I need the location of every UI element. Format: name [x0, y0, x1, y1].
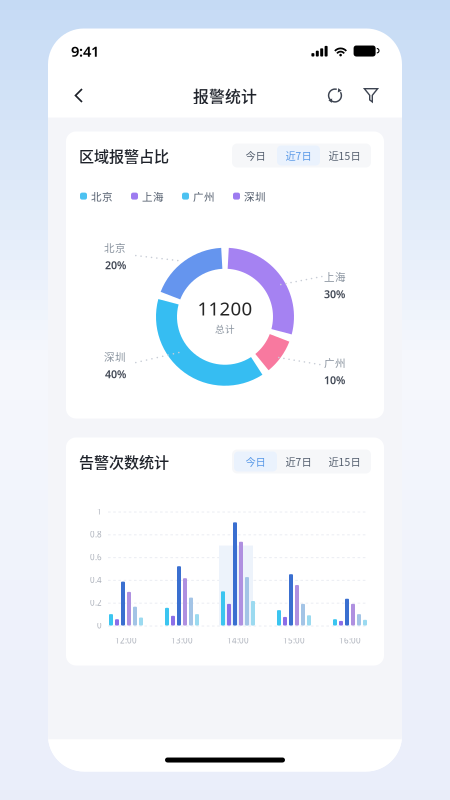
staticText: 深圳	[244, 188, 266, 204]
button[interactable]: Back	[65, 81, 93, 109]
staticText: 广州	[193, 188, 215, 204]
staticText: 0.4	[90, 575, 102, 585]
staticText: 报警统计	[193, 84, 257, 107]
button[interactable]: 近15日	[320, 451, 369, 471]
staticText: 北京	[91, 188, 113, 204]
staticText: 近7日	[285, 148, 311, 163]
staticText: 15:00	[283, 635, 305, 646]
button[interactable]: 今日	[234, 451, 277, 471]
staticText: 1	[97, 506, 102, 517]
button[interactable]: 今日	[234, 145, 277, 165]
staticText: 9:41	[71, 41, 99, 61]
staticText: 20%	[105, 258, 126, 272]
staticText: 今日	[245, 454, 265, 469]
staticText: 0.8	[90, 529, 102, 540]
button[interactable]: Filter	[357, 81, 385, 109]
staticText: 11200	[197, 296, 252, 321]
staticText: 近15日	[328, 454, 360, 469]
staticText: 深圳	[104, 349, 126, 364]
staticText: 0.6	[90, 552, 102, 562]
button[interactable]: 近7日	[277, 145, 320, 165]
staticText: 40%	[105, 367, 126, 381]
staticText: 13:00	[171, 635, 193, 646]
staticText: 14:00	[227, 635, 249, 646]
button[interactable]: 近7日	[277, 451, 320, 471]
staticText: 广州	[324, 355, 346, 370]
staticText: 近15日	[328, 148, 360, 163]
staticText: 30%	[324, 287, 345, 301]
staticText: 总计	[215, 322, 235, 336]
button[interactable]: 近15日	[320, 145, 369, 165]
staticText: 告警次数统计	[79, 451, 169, 472]
staticText: 区域报警占比	[79, 145, 169, 166]
staticText: 0	[97, 620, 102, 631]
staticText: 上海	[142, 188, 164, 204]
button[interactable]: Refresh	[321, 81, 349, 109]
staticText: 近7日	[285, 454, 311, 469]
staticText: 16:00	[339, 635, 361, 646]
staticText: 10%	[324, 373, 345, 387]
staticText: 12:00	[115, 635, 137, 646]
staticText: 上海	[324, 269, 346, 284]
staticText: 今日	[245, 148, 265, 163]
staticText: 北京	[104, 240, 126, 255]
staticText: 0.2	[90, 597, 102, 608]
